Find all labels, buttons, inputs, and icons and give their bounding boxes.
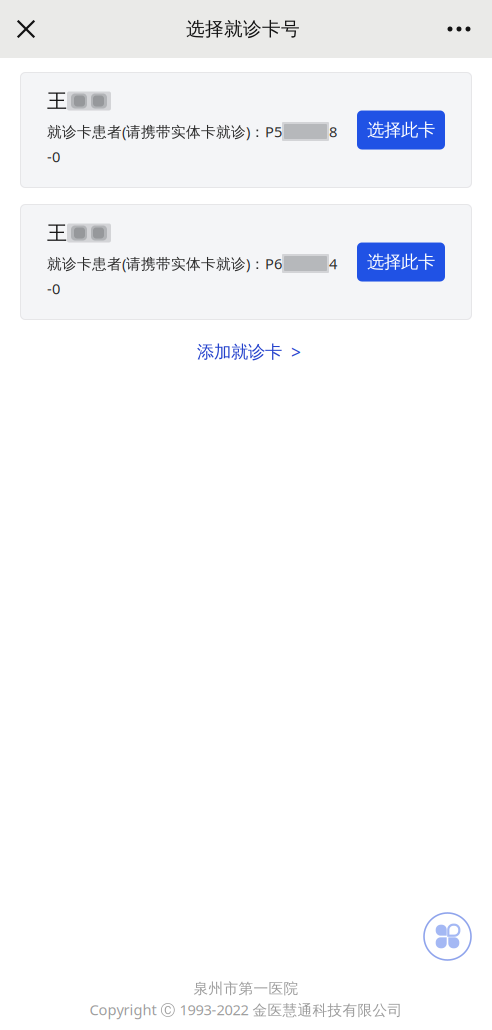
button[interactable]: 选择此卡 bbox=[357, 242, 445, 281]
staticText: 泉州市第一医院 bbox=[193, 979, 298, 997]
staticText: -0 bbox=[47, 279, 60, 298]
button[interactable]: 选择此卡 bbox=[357, 110, 445, 149]
staticText: 选择就诊卡号 bbox=[186, 17, 300, 40]
staticText: 王 bbox=[47, 221, 67, 245]
staticText: Copyright Ⓒ 1993-2022 金医慧通科技有限公司 bbox=[89, 1000, 402, 1019]
staticText: 王 bbox=[47, 89, 67, 113]
button[interactable]: Close bbox=[4, 7, 48, 51]
staticText: 添加就诊卡 bbox=[197, 341, 282, 363]
staticText: 选择此卡 bbox=[367, 251, 435, 273]
button[interactable]: Customer service bbox=[424, 913, 471, 960]
staticText: 就诊卡患者(请携带实体卡就诊)：P6 bbox=[47, 254, 282, 273]
button[interactable]: 添加就诊卡 bbox=[194, 341, 298, 363]
staticText: -0 bbox=[47, 147, 60, 166]
staticText: 就诊卡患者(请携带实体卡就诊)：P5 bbox=[47, 122, 282, 141]
staticText: 4 bbox=[329, 254, 337, 273]
staticText: 8 bbox=[329, 122, 337, 141]
staticText: 选择此卡 bbox=[367, 119, 435, 141]
button[interactable]: More bbox=[437, 7, 481, 51]
staticText: > bbox=[291, 340, 301, 363]
